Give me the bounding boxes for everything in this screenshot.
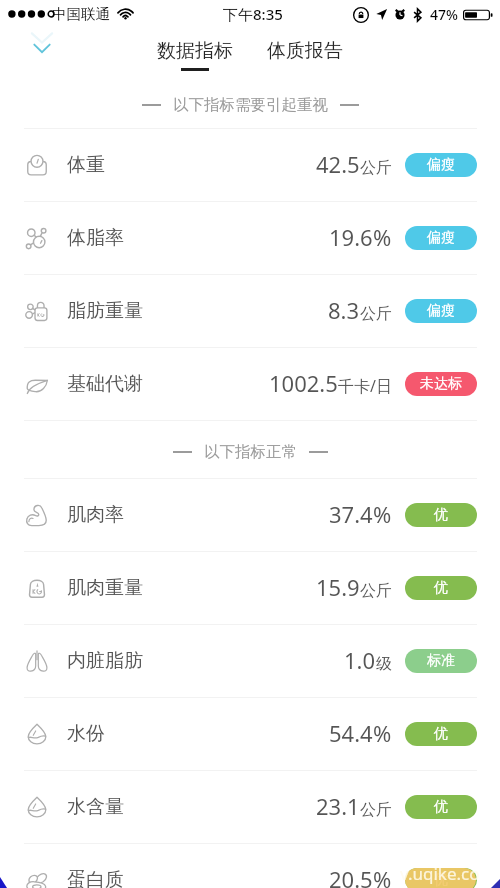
staticText: 偏瘦	[427, 156, 455, 174]
button[interactable]: 蛋白质	[0, 844, 500, 888]
staticText: v.uqike.co	[400, 862, 480, 885]
staticText: 公斤	[360, 800, 392, 820]
button[interactable]: 数据指标	[153, 39, 237, 71]
staticText: 以下指标需要引起重视	[173, 95, 328, 115]
staticText: 23.1	[316, 791, 360, 821]
staticText: 下午8:35	[223, 4, 283, 24]
staticText: 优	[434, 506, 448, 524]
staticText: 37.4	[329, 499, 373, 529]
staticText: 未达标	[420, 375, 462, 393]
staticText: 数据指标	[157, 39, 233, 63]
button[interactable]: 体脂率	[0, 202, 500, 274]
staticText: 偏瘦	[427, 229, 455, 247]
staticText: 公斤	[360, 158, 392, 178]
staticText: 54.4	[329, 718, 373, 748]
staticText: %	[373, 864, 392, 888]
staticText: %	[373, 222, 392, 252]
button[interactable]: 体重	[0, 129, 500, 201]
staticText: %	[373, 718, 392, 748]
staticText: 体重	[67, 153, 105, 177]
staticText: 47%	[430, 5, 458, 24]
button[interactable]: 脂肪重量	[0, 275, 500, 347]
staticText: 1.0	[344, 645, 376, 675]
staticText: 优	[434, 798, 448, 816]
staticText: 1002.5	[269, 368, 338, 398]
staticText: 千卡/日	[338, 375, 392, 397]
staticText: 中国联通	[52, 5, 110, 23]
staticText: 体脂率	[67, 226, 124, 250]
staticText: 优	[434, 579, 448, 597]
staticText: 19.6	[329, 222, 373, 252]
staticText: 优	[434, 725, 448, 743]
staticText: 蛋白质	[67, 868, 124, 888]
button[interactable]: 内脏脂肪	[0, 625, 500, 697]
staticText: 水份	[67, 722, 105, 746]
staticText: 公斤	[360, 581, 392, 601]
staticText: 20.5	[329, 864, 373, 888]
staticText: 15.9	[316, 572, 360, 602]
button[interactable]: 水份	[0, 698, 500, 770]
staticText: 以下指标正常	[204, 442, 297, 462]
staticText: 公斤	[360, 304, 392, 324]
staticText: %	[373, 499, 392, 529]
staticText: 肌肉率	[67, 503, 124, 527]
staticText: 优	[434, 871, 448, 888]
button[interactable]: 肌肉重量	[0, 552, 500, 624]
staticText: 8.3	[328, 295, 360, 325]
button[interactable]: Collapse panel	[31, 32, 53, 54]
staticText: 肌肉重量	[67, 576, 143, 600]
button[interactable]: 肌肉率	[0, 479, 500, 551]
staticText: 级	[376, 654, 392, 674]
staticText: 基础代谢	[67, 372, 143, 396]
staticText: 脂肪重量	[67, 299, 143, 323]
button[interactable]: 基础代谢	[0, 348, 500, 420]
button[interactable]: 体质报告	[263, 39, 347, 63]
staticText: 体质报告	[267, 39, 343, 63]
staticText: 标准	[427, 652, 455, 670]
button[interactable]: 水含量	[0, 771, 500, 843]
staticText: 偏瘦	[427, 302, 455, 320]
staticText: 水含量	[67, 795, 124, 819]
staticText: 内脏脂肪	[67, 649, 143, 673]
staticText: 42.5	[316, 149, 360, 179]
